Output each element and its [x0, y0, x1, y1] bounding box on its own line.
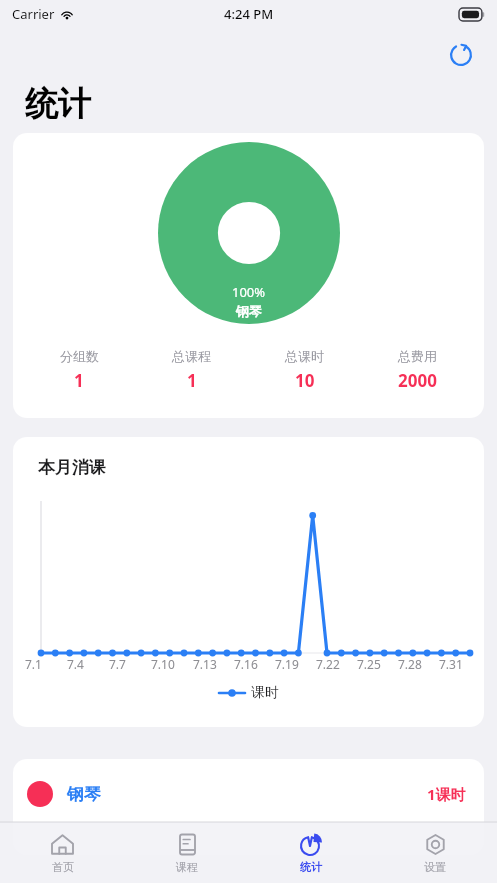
button[interactable]: 统计: [249, 822, 373, 883]
staticText: 7.25: [357, 656, 381, 672]
staticText: 本月消课: [38, 457, 106, 478]
button[interactable]: 钢琴: [13, 759, 484, 855]
staticText: 总课程: [172, 348, 211, 364]
staticText: 统计: [25, 83, 91, 125]
staticText: 7.4: [67, 656, 84, 672]
staticText: 1: [74, 369, 84, 392]
button[interactable]: 课程: [125, 822, 249, 883]
button[interactable]: 首页: [0, 822, 125, 883]
staticText: 课时: [251, 684, 279, 702]
staticText: 首页: [52, 860, 74, 874]
button[interactable]: 100%: [13, 133, 484, 418]
staticText: 7.22: [316, 656, 340, 672]
staticText: 2000: [398, 369, 437, 392]
staticText: 7.16: [234, 656, 258, 672]
button[interactable]: 总费用: [361, 348, 474, 392]
staticText: 7.1: [25, 656, 42, 672]
staticText: 钢琴: [67, 784, 101, 805]
button[interactable]: 总课时: [248, 348, 361, 392]
staticText: 4:24 PM: [224, 5, 274, 23]
staticText: 总课时: [285, 348, 324, 364]
staticText: 总费用: [398, 348, 437, 364]
staticText: 7.28: [398, 656, 422, 672]
staticText: 1课时: [427, 784, 466, 804]
staticText: 7.31: [439, 656, 463, 672]
staticText: 钢琴: [236, 303, 262, 319]
button[interactable]: 分组数: [23, 348, 135, 392]
staticText: 100%: [232, 283, 266, 301]
button[interactable]: Refresh: [439, 32, 483, 76]
staticText: 7.7: [109, 656, 126, 672]
staticText: 7.19: [275, 656, 299, 672]
button[interactable]: 设置: [373, 822, 497, 883]
staticText: 课程: [176, 860, 198, 874]
staticText: 分组数: [60, 348, 99, 364]
staticText: 设置: [424, 860, 446, 874]
staticText: 统计: [300, 860, 322, 874]
button[interactable]: 总课程: [135, 348, 248, 392]
staticText: 10: [295, 369, 315, 392]
staticText: 7.10: [151, 656, 175, 672]
staticText: 7.13: [193, 656, 217, 672]
button[interactable]: 本月消课: [13, 437, 484, 727]
staticText: 1: [187, 369, 197, 392]
staticText: Carrier: [12, 5, 55, 23]
